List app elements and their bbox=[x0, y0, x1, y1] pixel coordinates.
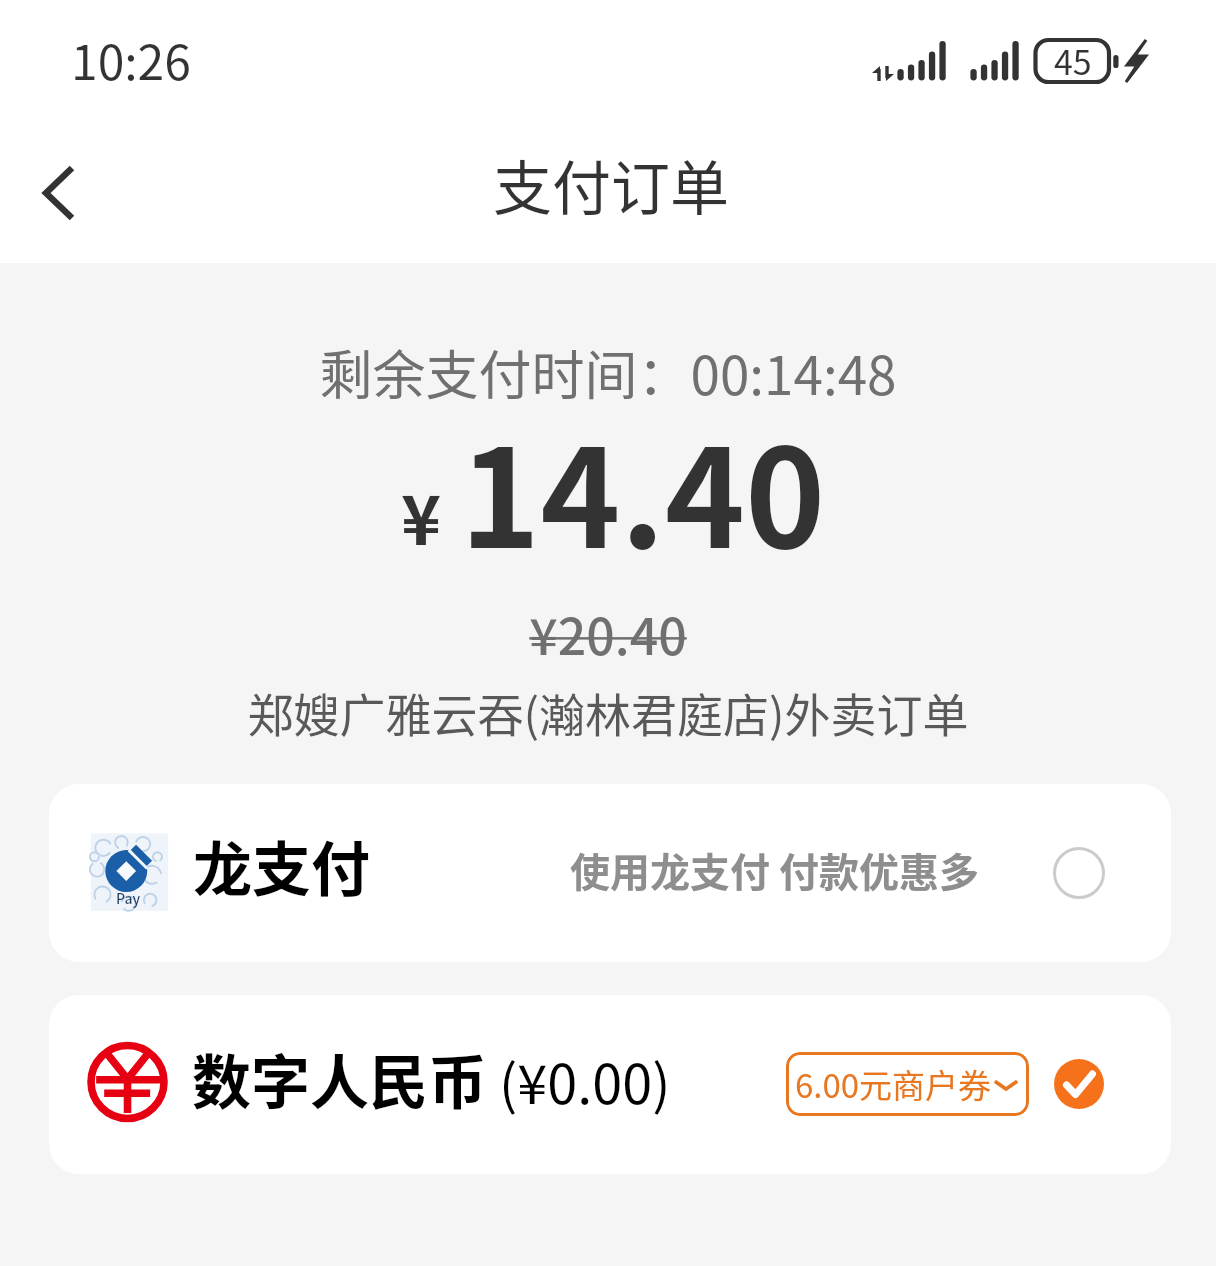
staticText: 45 bbox=[1054, 36, 1092, 85]
staticText: 郑嫂广雅云吞(瀚林君庭店)外卖订单 bbox=[0, 679, 1216, 746]
button[interactable]: 6.00元商户券 bbox=[786, 1052, 1029, 1116]
staticText: 14.40 bbox=[460, 390, 826, 587]
button[interactable]: Back bbox=[7, 131, 127, 251]
staticText: 使用龙支付 付款优惠多 bbox=[570, 841, 980, 899]
staticText: 剩余支付时间：00:14:48 bbox=[0, 334, 1216, 411]
button[interactable]: 数字人民币 (¥0.00) bbox=[49, 995, 1171, 1174]
staticText: Pay bbox=[116, 888, 141, 908]
staticText: 6.00元商户券 bbox=[795, 1060, 992, 1108]
staticText: 龙支付 bbox=[193, 823, 371, 908]
staticText: 10:26 bbox=[71, 24, 191, 94]
button[interactable]: Select 龙支付 bbox=[1053, 847, 1105, 899]
button[interactable]: Selected 数字人民币 bbox=[1054, 1059, 1104, 1109]
staticText: 数字人民币 (¥0.00) bbox=[192, 1036, 671, 1121]
button[interactable]: Pay bbox=[49, 784, 1171, 962]
staticText: ¥ bbox=[401, 466, 442, 564]
staticText: ¥20.40 bbox=[0, 597, 1216, 669]
staticText: 支付订单 bbox=[493, 142, 730, 227]
